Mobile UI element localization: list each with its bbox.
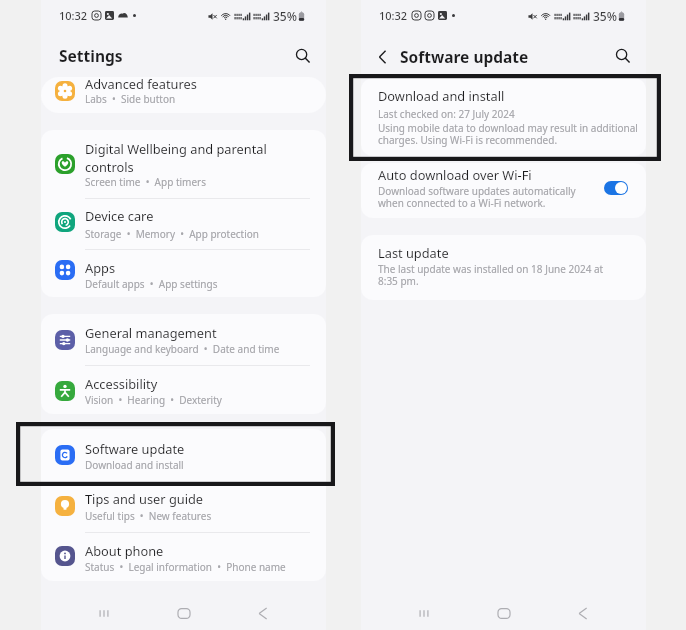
button[interactable]: Back bbox=[566, 600, 600, 626]
button[interactable]: Auto download over Wi-Fi bbox=[361, 163, 646, 218]
button[interactable]: Recents bbox=[407, 600, 441, 626]
staticText: The last update was installed on 18 June… bbox=[378, 262, 610, 288]
staticText: Software update bbox=[85, 440, 185, 457]
staticText: Last update bbox=[378, 244, 449, 261]
button[interactable]: Search bbox=[611, 44, 635, 68]
button[interactable]: Recents bbox=[87, 600, 121, 626]
button[interactable]: Home bbox=[167, 600, 201, 626]
staticText: Screen time • App timers bbox=[85, 175, 207, 189]
button[interactable]: General management bbox=[41, 314, 326, 365]
staticText: Tips and user guide bbox=[85, 490, 204, 507]
staticText: About phone bbox=[85, 542, 164, 559]
button[interactable]: Advanced features bbox=[41, 77, 326, 113]
button[interactable]: Tips and user guide bbox=[41, 484, 326, 532]
button[interactable]: Software update bbox=[41, 429, 326, 484]
staticText: Download and install bbox=[378, 87, 505, 104]
staticText: Default apps • App settings bbox=[85, 277, 218, 291]
staticText: Accessibility bbox=[85, 375, 158, 392]
staticText: 35% bbox=[273, 8, 297, 24]
staticText: Language and keyboard • Date and time bbox=[85, 342, 280, 356]
staticText: Useful tips • New features bbox=[85, 509, 212, 523]
button[interactable]: About phone bbox=[41, 532, 326, 581]
staticText: Advanced features bbox=[85, 75, 197, 92]
button[interactable]: Search bbox=[291, 44, 315, 68]
button[interactable]: Auto download over Wi-Fi toggle bbox=[604, 181, 628, 195]
button[interactable]: Digital Wellbeing and parental controls bbox=[41, 130, 326, 198]
button[interactable]: Apps bbox=[41, 249, 326, 297]
button[interactable]: Last update bbox=[361, 235, 646, 300]
button[interactable]: Home bbox=[487, 600, 521, 626]
staticText: Auto download over Wi-Fi bbox=[378, 166, 532, 183]
staticText: Status • Legal information • Phone name bbox=[85, 560, 286, 574]
staticText: 35% bbox=[593, 8, 617, 24]
button[interactable]: Back bbox=[376, 45, 389, 69]
staticText: Download software updates automatically … bbox=[378, 184, 578, 210]
staticText: Device care bbox=[85, 207, 154, 224]
staticText: Download and install bbox=[85, 458, 184, 472]
staticText: Settings bbox=[59, 45, 123, 66]
staticText: General management bbox=[85, 324, 217, 341]
button[interactable]: Back bbox=[246, 600, 280, 626]
staticText: 10:32 bbox=[379, 8, 408, 23]
staticText: Storage • Memory • App protection bbox=[85, 227, 260, 241]
button[interactable]: Accessibility bbox=[41, 365, 326, 414]
staticText: Using mobile data to download may result… bbox=[378, 121, 646, 147]
staticText: Last checked on: 27 July 2024 bbox=[378, 107, 515, 121]
staticText: 10:32 bbox=[59, 8, 88, 23]
staticText: Software update bbox=[400, 46, 529, 67]
button[interactable]: Download and install bbox=[361, 78, 646, 156]
staticText: Digital Wellbeing and parental controls bbox=[85, 140, 275, 176]
staticText: Labs • Side button bbox=[85, 92, 176, 106]
staticText: Vision • Hearing • Dexterity bbox=[85, 393, 222, 407]
staticText: Apps bbox=[85, 259, 116, 276]
button[interactable]: Device care bbox=[41, 198, 326, 249]
